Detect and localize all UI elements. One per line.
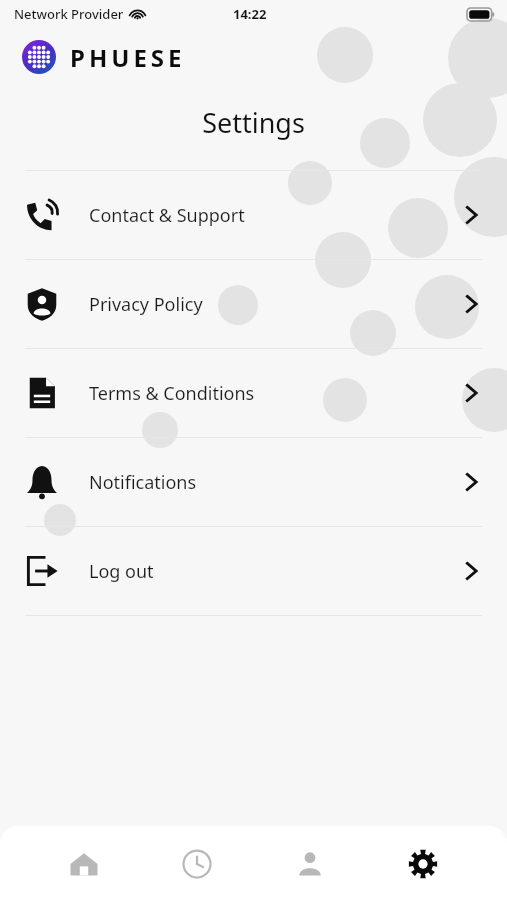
staticText: Notifications (89, 470, 466, 495)
staticText: Privacy Policy (89, 292, 466, 317)
button[interactable]: Log out (0, 527, 507, 615)
staticText: Log out (89, 559, 466, 584)
button[interactable]: Contact & Support (0, 171, 507, 259)
staticText: PHUESE (70, 41, 186, 74)
staticText: Contact & Support (89, 203, 466, 228)
button[interactable]: Settings (394, 842, 452, 886)
button[interactable]: History (168, 842, 226, 886)
staticText: Network Provider (14, 5, 124, 23)
staticText: 14:22 (233, 5, 267, 23)
button[interactable]: Notifications (0, 438, 507, 526)
button[interactable]: Profile (281, 842, 339, 886)
button[interactable]: Terms & Conditions (0, 349, 507, 437)
button[interactable]: Home (55, 842, 113, 886)
staticText: Terms & Conditions (89, 381, 466, 406)
button[interactable]: Privacy Policy (0, 260, 507, 348)
staticText: Settings (0, 104, 507, 141)
